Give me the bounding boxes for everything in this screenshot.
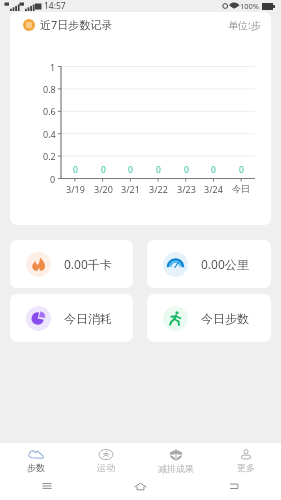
button[interactable]: 步数 <box>0 443 71 475</box>
staticText: 0 <box>50 173 56 185</box>
button[interactable]: Home <box>93 475 187 497</box>
staticText: 0 <box>73 164 78 176</box>
staticText: 3/21 <box>121 183 140 195</box>
button[interactable]: 0.00千卡 <box>10 240 133 288</box>
button[interactable]: 更多 <box>211 443 281 475</box>
staticText: 近7日步数记录 <box>40 17 113 32</box>
button[interactable]: 减排成果 <box>141 443 211 475</box>
button[interactable]: 今日步数 <box>147 294 271 342</box>
staticText: 0.4 <box>43 128 56 140</box>
staticText: 今日消耗 <box>64 311 112 326</box>
staticText: 0.00千卡 <box>64 256 112 272</box>
staticText: 100% <box>240 1 260 11</box>
staticText: 运动 <box>97 462 115 473</box>
staticText: 0 <box>211 164 216 176</box>
staticText: 0.6 <box>43 105 56 117</box>
staticText: 0 <box>239 164 244 176</box>
staticText: 14:57 <box>44 0 66 12</box>
staticText: 单位:步 <box>228 18 261 32</box>
staticText: 1 <box>50 61 56 73</box>
staticText: 0.8 <box>43 83 56 95</box>
staticText: 0 <box>184 164 189 176</box>
staticText: 更多 <box>237 462 255 473</box>
staticText: 3/24 <box>204 183 223 195</box>
staticText: 减排成果 <box>158 463 194 474</box>
staticText: 步数 <box>27 462 45 473</box>
staticText: 0 <box>128 164 133 176</box>
staticText: 3/19 <box>66 183 85 195</box>
staticText: 今日 <box>232 183 250 194</box>
staticText: 0.00公里 <box>201 256 249 272</box>
staticText: 3/23 <box>177 183 196 195</box>
staticText: 3/20 <box>94 183 113 195</box>
staticText: 0.2 <box>43 150 56 162</box>
staticText: 0 <box>101 164 106 176</box>
staticText: 3/22 <box>149 183 168 195</box>
staticText: 0 <box>156 164 161 176</box>
staticText: 今日步数 <box>201 311 249 326</box>
button[interactable]: 今日消耗 <box>10 294 133 342</box>
button[interactable]: 0.00公里 <box>147 240 271 288</box>
button[interactable]: Recents <box>0 475 93 497</box>
button[interactable]: 运动 <box>71 443 141 475</box>
button[interactable]: Back <box>187 475 281 497</box>
